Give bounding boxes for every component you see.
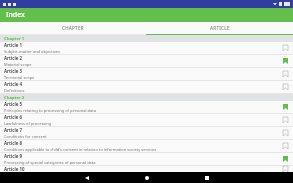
staticText: Material scope: [4, 62, 32, 67]
button[interactable]: Article 3: [0, 68, 293, 80]
staticText: Article 10: [4, 166, 25, 172]
button[interactable]: Back: [57, 172, 117, 183]
button[interactable]: CHAPTER: [0, 22, 146, 34]
button[interactable]: Bookmark Article 7: [277, 127, 293, 139]
button[interactable]: Article 2: [0, 55, 293, 67]
button[interactable]: Bookmark Article 1: [277, 42, 293, 54]
button[interactable]: Article 1: [0, 42, 293, 54]
button[interactable]: Article 8: [0, 140, 293, 152]
staticText: Article 7: [4, 127, 23, 133]
button[interactable]: Bookmark Article 10: [277, 166, 293, 172]
button[interactable]: Bookmark Article 8: [277, 140, 293, 152]
staticText: Article 3: [4, 68, 23, 74]
staticText: Conditions for consent: [4, 134, 47, 139]
button[interactable]: Home: [117, 172, 177, 183]
staticText: Article 2: [4, 55, 23, 61]
button[interactable]: ARTICLE: [146, 22, 293, 34]
staticText: Article 8: [4, 140, 23, 146]
staticText: Processing of special categories of pers…: [4, 160, 96, 165]
button[interactable]: Article 6: [0, 114, 293, 126]
staticText: ARTICLE: [210, 25, 230, 31]
button[interactable]: Article 9: [0, 153, 293, 165]
button[interactable]: Bookmark Article 9: [277, 153, 293, 165]
staticText: CHAPTER: [62, 25, 84, 31]
button[interactable]: Chapter 2: [0, 94, 293, 101]
staticText: Article 5: [4, 101, 23, 107]
button[interactable]: Article 10: [0, 166, 293, 172]
button[interactable]: Chapter 1: [0, 35, 293, 42]
staticText: Chapter 2: [4, 95, 25, 101]
staticText: Conditions applicable to child's consent…: [4, 147, 157, 152]
staticText: Chapter 1: [4, 36, 25, 42]
button[interactable]: Bookmark Article 4: [277, 81, 293, 93]
staticText: Subject-matter and objectives: [4, 49, 60, 54]
button[interactable]: Recents: [177, 172, 237, 183]
button[interactable]: Article 7: [0, 127, 293, 139]
staticText: Article 9: [4, 153, 23, 159]
button[interactable]: Article 4: [0, 81, 293, 93]
button[interactable]: Bookmark Article 6: [277, 114, 293, 126]
button[interactable]: Bookmark Article 5: [277, 101, 293, 113]
button[interactable]: Bookmark Article 3: [277, 68, 293, 80]
staticText: Article 4: [4, 81, 23, 87]
staticText: Article 6: [4, 114, 23, 120]
staticText: Principles relating to processing of per…: [4, 108, 96, 113]
staticText: Index: [6, 10, 25, 20]
button[interactable]: Article 5: [0, 101, 293, 113]
staticText: Territorial scope: [4, 75, 35, 80]
staticText: Lawfulness of processing: [4, 121, 52, 126]
staticText: Article 1: [4, 42, 23, 48]
button[interactable]: Bookmark Article 2: [277, 55, 293, 67]
staticText: Definitions: [4, 88, 25, 93]
